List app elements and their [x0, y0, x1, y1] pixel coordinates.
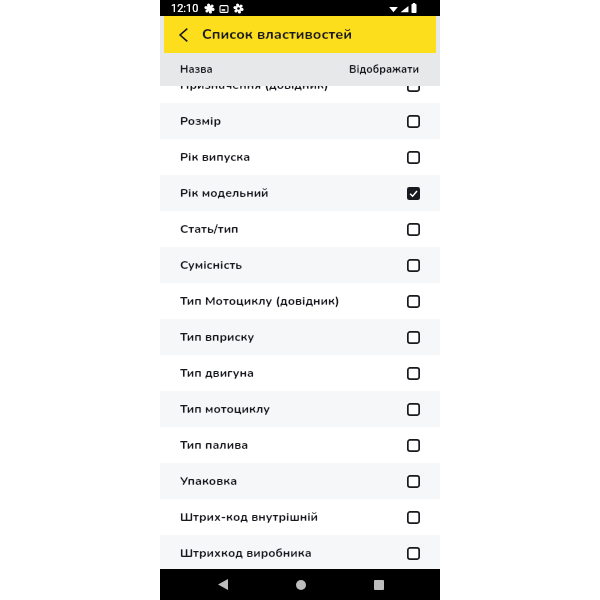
button[interactable]: Back: [207, 569, 238, 600]
button[interactable]: Штрихкод виробника: [160, 535, 440, 569]
staticText: Тип двигуна: [180, 365, 254, 382]
staticText: Тип палива: [180, 437, 249, 454]
button[interactable]: Recents: [363, 569, 394, 600]
button[interactable]: Тип палива: [160, 427, 440, 463]
staticText: Назва: [180, 62, 213, 77]
button[interactable]: Призначення (довідник): [160, 86, 440, 103]
button[interactable]: Home: [285, 569, 316, 600]
button[interactable]: Рік модельний: [160, 175, 440, 211]
button[interactable]: Back: [164, 16, 436, 53]
button[interactable]: Упаковка: [160, 463, 440, 499]
staticText: Стать/тип: [180, 221, 239, 238]
button[interactable]: Розмір: [160, 103, 440, 139]
staticText: Тип мотоциклу: [180, 401, 270, 418]
button[interactable]: Back: [164, 16, 202, 53]
staticText: Сумісність: [180, 257, 243, 274]
staticText: Тип Мотоциклу (довідник): [180, 293, 340, 310]
button[interactable]: Стать/тип: [160, 211, 440, 247]
button[interactable]: Тип мотоциклу: [160, 391, 440, 427]
button[interactable]: Тип вприску: [160, 319, 440, 355]
button[interactable]: Сумісність: [160, 247, 440, 283]
staticText: Призначення (довідник): [180, 86, 329, 94]
staticText: Рік випуска: [180, 149, 251, 166]
button[interactable]: Тип Мотоциклу (довідник): [160, 283, 440, 319]
button[interactable]: Рік випуска: [160, 139, 440, 175]
staticText: Рік модельний: [180, 185, 269, 202]
staticText: 12:10: [171, 2, 199, 15]
button[interactable]: Тип двигуна: [160, 355, 440, 391]
staticText: Штрих-код внутрішній: [180, 509, 318, 526]
staticText: Тип вприску: [180, 329, 255, 346]
staticText: Відображати: [349, 62, 420, 77]
staticText: Список властивостей: [202, 25, 352, 45]
staticText: Упаковка: [180, 473, 238, 490]
staticText: Розмір: [180, 113, 221, 130]
staticText: Штрихкод виробника: [180, 545, 312, 562]
button[interactable]: Штрих-код внутрішній: [160, 499, 440, 535]
